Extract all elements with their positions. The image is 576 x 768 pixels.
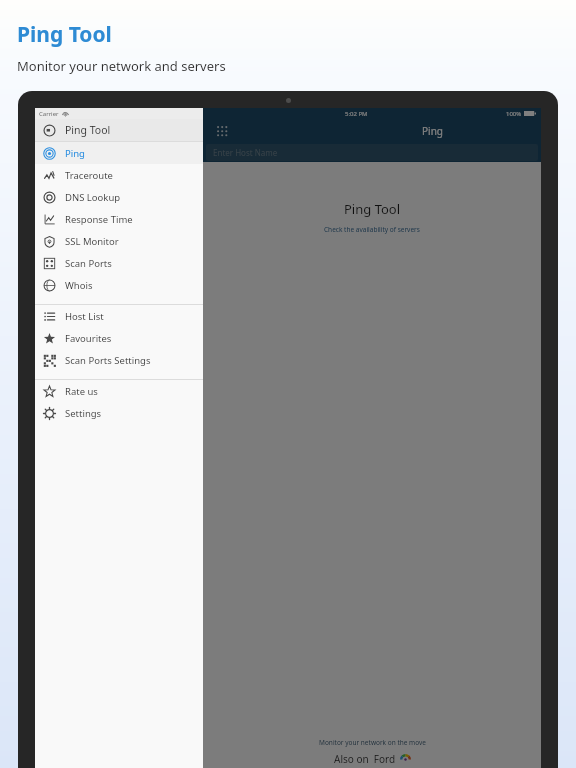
button[interactable]: Host List (35, 305, 203, 327)
staticText: Ping (65, 147, 85, 160)
staticText: Settings (65, 407, 102, 420)
staticText: Enter Host Name (213, 147, 278, 158)
button[interactable]: Scan Ports (35, 252, 203, 274)
staticText: Also on Ford (334, 752, 396, 766)
staticText: Traceroute (65, 169, 113, 182)
staticText: 5:02 PM (345, 110, 368, 118)
button[interactable]: Traceroute (35, 164, 203, 186)
staticText: Host List (65, 310, 104, 323)
button[interactable]: Ping (35, 142, 203, 164)
button[interactable]: Response Time (35, 208, 203, 230)
button[interactable]: Favourites (35, 327, 203, 349)
button[interactable]: SSL Monitor (35, 230, 203, 252)
button[interactable]: Whois (35, 274, 203, 296)
staticText: Carrier (39, 110, 59, 118)
staticText: Ping Tool (65, 123, 111, 137)
staticText: Monitor your network and servers (17, 57, 226, 75)
button[interactable]: Enter Host Name (206, 144, 538, 161)
staticText: 100% (506, 110, 522, 118)
staticText: Scan Ports (65, 257, 112, 270)
staticText: Response Time (65, 213, 133, 226)
button[interactable]: DNS Lookup (35, 186, 203, 208)
button[interactable]: Menu (215, 124, 229, 138)
staticText: Rate us (65, 385, 98, 398)
staticText: Check the availability of servers (324, 225, 420, 234)
button[interactable]: Settings (35, 402, 203, 424)
staticText: Whois (65, 279, 93, 292)
staticText: Scan Ports Settings (65, 354, 151, 367)
staticText: DNS Lookup (65, 191, 121, 204)
staticText: Ping Tool (17, 20, 112, 49)
button[interactable]: Scan Ports Settings (35, 349, 203, 371)
staticText: Favourites (65, 332, 112, 345)
staticText: Ping (422, 124, 443, 138)
button[interactable]: Ping Tool (35, 119, 203, 141)
staticText: Ping Tool (344, 200, 401, 218)
button[interactable]: Rate us (35, 380, 203, 402)
staticText: SSL Monitor (65, 235, 119, 248)
staticText: Monitor your network on the move (319, 738, 426, 747)
